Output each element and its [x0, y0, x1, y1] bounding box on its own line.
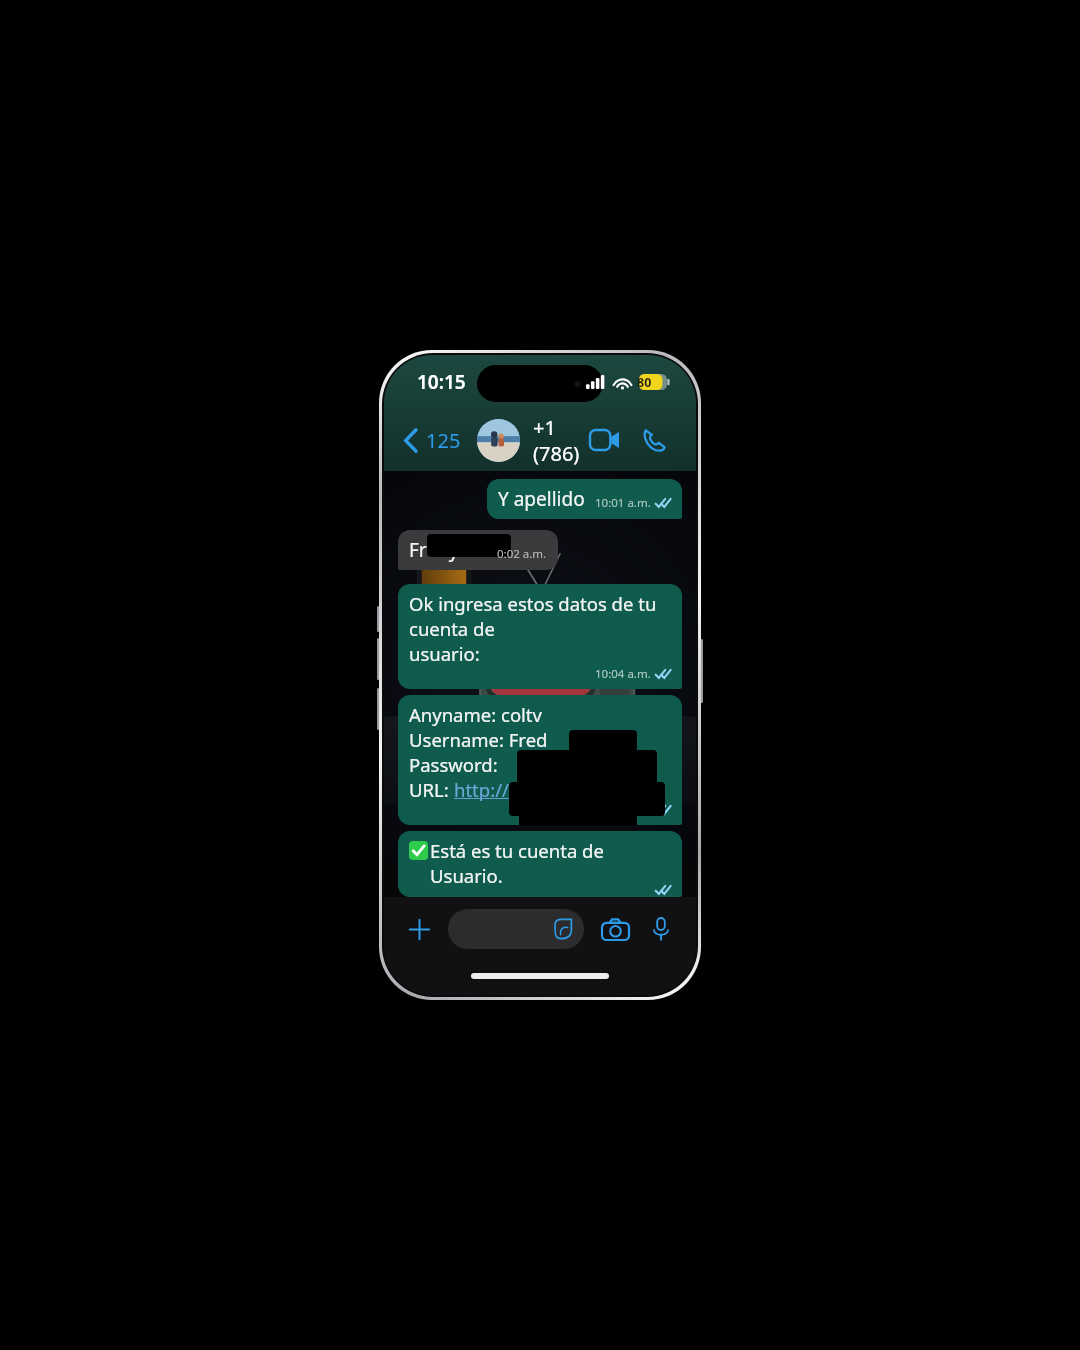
button[interactable]: Camera: [594, 908, 636, 950]
staticText: 10:01 a.m.: [595, 495, 651, 511]
staticText: +1 (786): [533, 414, 582, 467]
button[interactable]: Back to chats, 125 unread: [400, 423, 465, 458]
button[interactable]: Video call: [582, 418, 626, 462]
staticText: Username: Fred: [409, 727, 548, 752]
staticText: Está es tu cuenta de Usuario.: [430, 838, 671, 889]
staticText: Fredy .: [409, 537, 469, 563]
button[interactable]: Contact profile photo: [477, 419, 520, 462]
staticText: http://: [454, 777, 509, 802]
button[interactable]: Anyname: coltv: [398, 695, 682, 825]
button[interactable]: Ok ingresa estos datos de tu cuenta de u…: [398, 584, 682, 689]
staticText: Anyname: coltv: [409, 702, 542, 727]
button[interactable]: Attach: [398, 908, 440, 950]
button[interactable]: Voice call: [632, 418, 676, 462]
staticText: Password:: [409, 752, 498, 777]
staticText: Asegúrate de ingresar a la app, los dato…: [409, 889, 671, 890]
button[interactable]: Fredy .: [398, 530, 558, 570]
staticText: 10:15: [417, 369, 466, 395]
button[interactable]: Y apellido: [487, 479, 682, 519]
staticText: 10:04 a.m.: [595, 802, 651, 818]
staticText: 0:02 a.m.: [497, 546, 547, 562]
staticText: Ok ingresa estos datos de tu cuenta de u…: [409, 591, 671, 666]
button[interactable]: Record voice message: [640, 908, 682, 950]
staticText: 125: [426, 427, 461, 454]
staticText: URL:: [409, 777, 454, 802]
staticText: Y apellido: [498, 486, 585, 512]
button[interactable]: Message: [448, 909, 584, 949]
staticText: 80: [637, 374, 652, 391]
staticText: 10:04 a.m.: [595, 666, 651, 682]
button[interactable]: Está es tu cuenta de Usuario.: [398, 831, 682, 897]
